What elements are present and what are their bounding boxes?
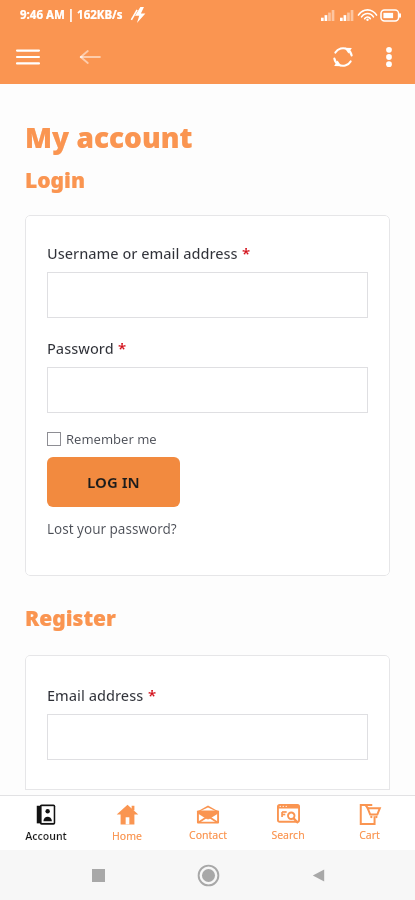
button[interactable]: Home (92, 799, 162, 847)
button[interactable]: LOG IN (47, 457, 180, 507)
button[interactable]: More options (369, 37, 409, 77)
staticText: Email address (47, 685, 144, 705)
button[interactable]: Home (153, 853, 263, 897)
staticText: LOG IN (87, 472, 140, 492)
staticText: Contact (189, 828, 227, 842)
staticText: Home (112, 829, 142, 843)
button[interactable]: Account (11, 800, 81, 847)
button[interactable]: Cart (334, 800, 404, 846)
button[interactable]: Back (263, 853, 373, 897)
button[interactable]: Remember me (47, 430, 157, 448)
staticText: My account (25, 118, 193, 156)
button[interactable]: Contact (173, 801, 243, 846)
staticText: Login (25, 166, 85, 195)
staticText: Cart (359, 828, 380, 842)
button[interactable]: Recent apps (43, 853, 153, 897)
staticText: Remember me (66, 430, 157, 448)
staticText: Account (25, 829, 67, 843)
staticText: Password (47, 338, 114, 358)
button[interactable]: Search (253, 800, 323, 846)
button[interactable] (47, 714, 368, 760)
staticText: 9:46 AM | 162KB/s (20, 7, 123, 23)
button[interactable] (47, 272, 368, 318)
staticText: Search (271, 828, 305, 842)
staticText: Username or email address (47, 243, 238, 263)
staticText: * (118, 338, 127, 358)
button[interactable]: Back (70, 37, 110, 77)
button[interactable]: Menu (8, 37, 48, 77)
button[interactable] (47, 367, 368, 413)
button[interactable]: Lost your password? (47, 520, 177, 538)
staticText: * (242, 243, 251, 263)
staticText: * (148, 685, 157, 705)
staticText: Register (25, 604, 116, 633)
button[interactable]: Refresh (321, 35, 365, 79)
